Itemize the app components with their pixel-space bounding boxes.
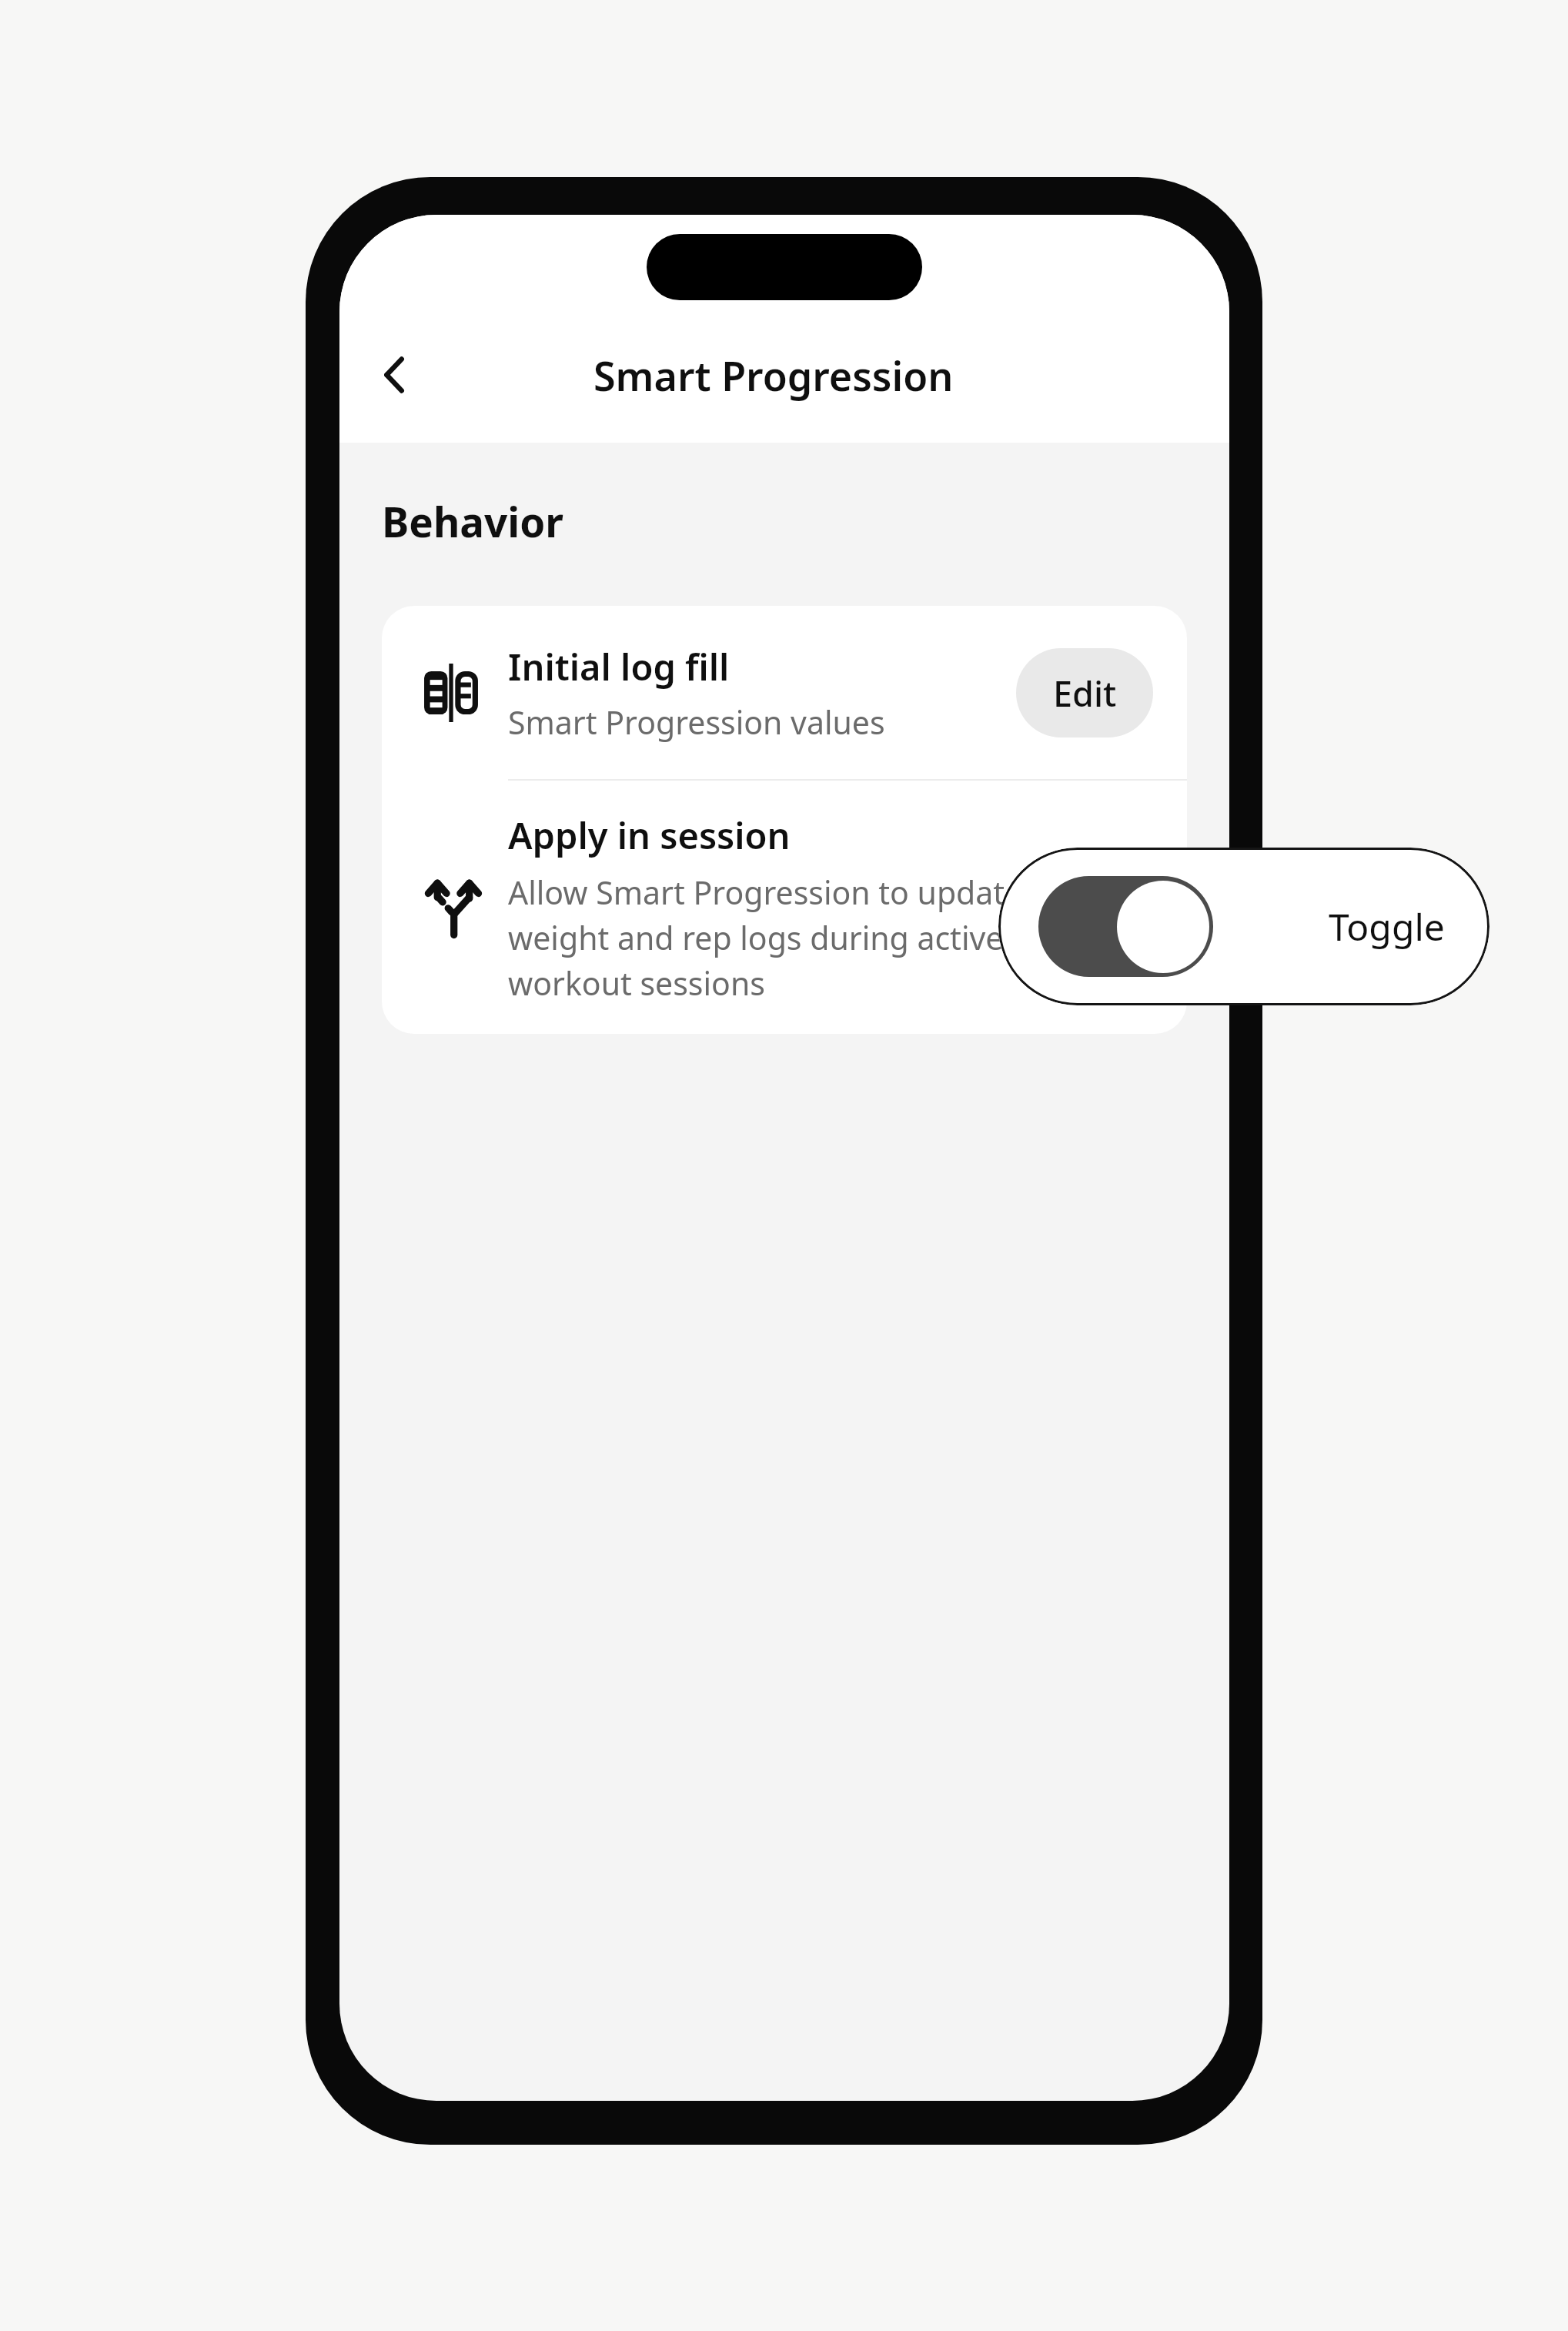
staticText: Allow Smart Progression to update weight… [508, 871, 1038, 1005]
staticText: Smart Progression [593, 348, 954, 403]
staticText: Smart Progression values [508, 701, 885, 744]
button[interactable]: Edit [1016, 648, 1153, 737]
staticText: Toggle [1329, 901, 1445, 951]
button[interactable]: Initial log fill [382, 606, 1187, 779]
staticText: Behavior [382, 493, 564, 549]
button[interactable]: Back [347, 329, 440, 421]
staticText: Apply in session [508, 811, 791, 860]
button[interactable]: Apply in session toggle [1038, 876, 1213, 977]
staticText: Initial log fill [508, 642, 730, 691]
staticText: Edit [1053, 670, 1117, 717]
button[interactable]: Apply in session [382, 781, 1187, 1034]
